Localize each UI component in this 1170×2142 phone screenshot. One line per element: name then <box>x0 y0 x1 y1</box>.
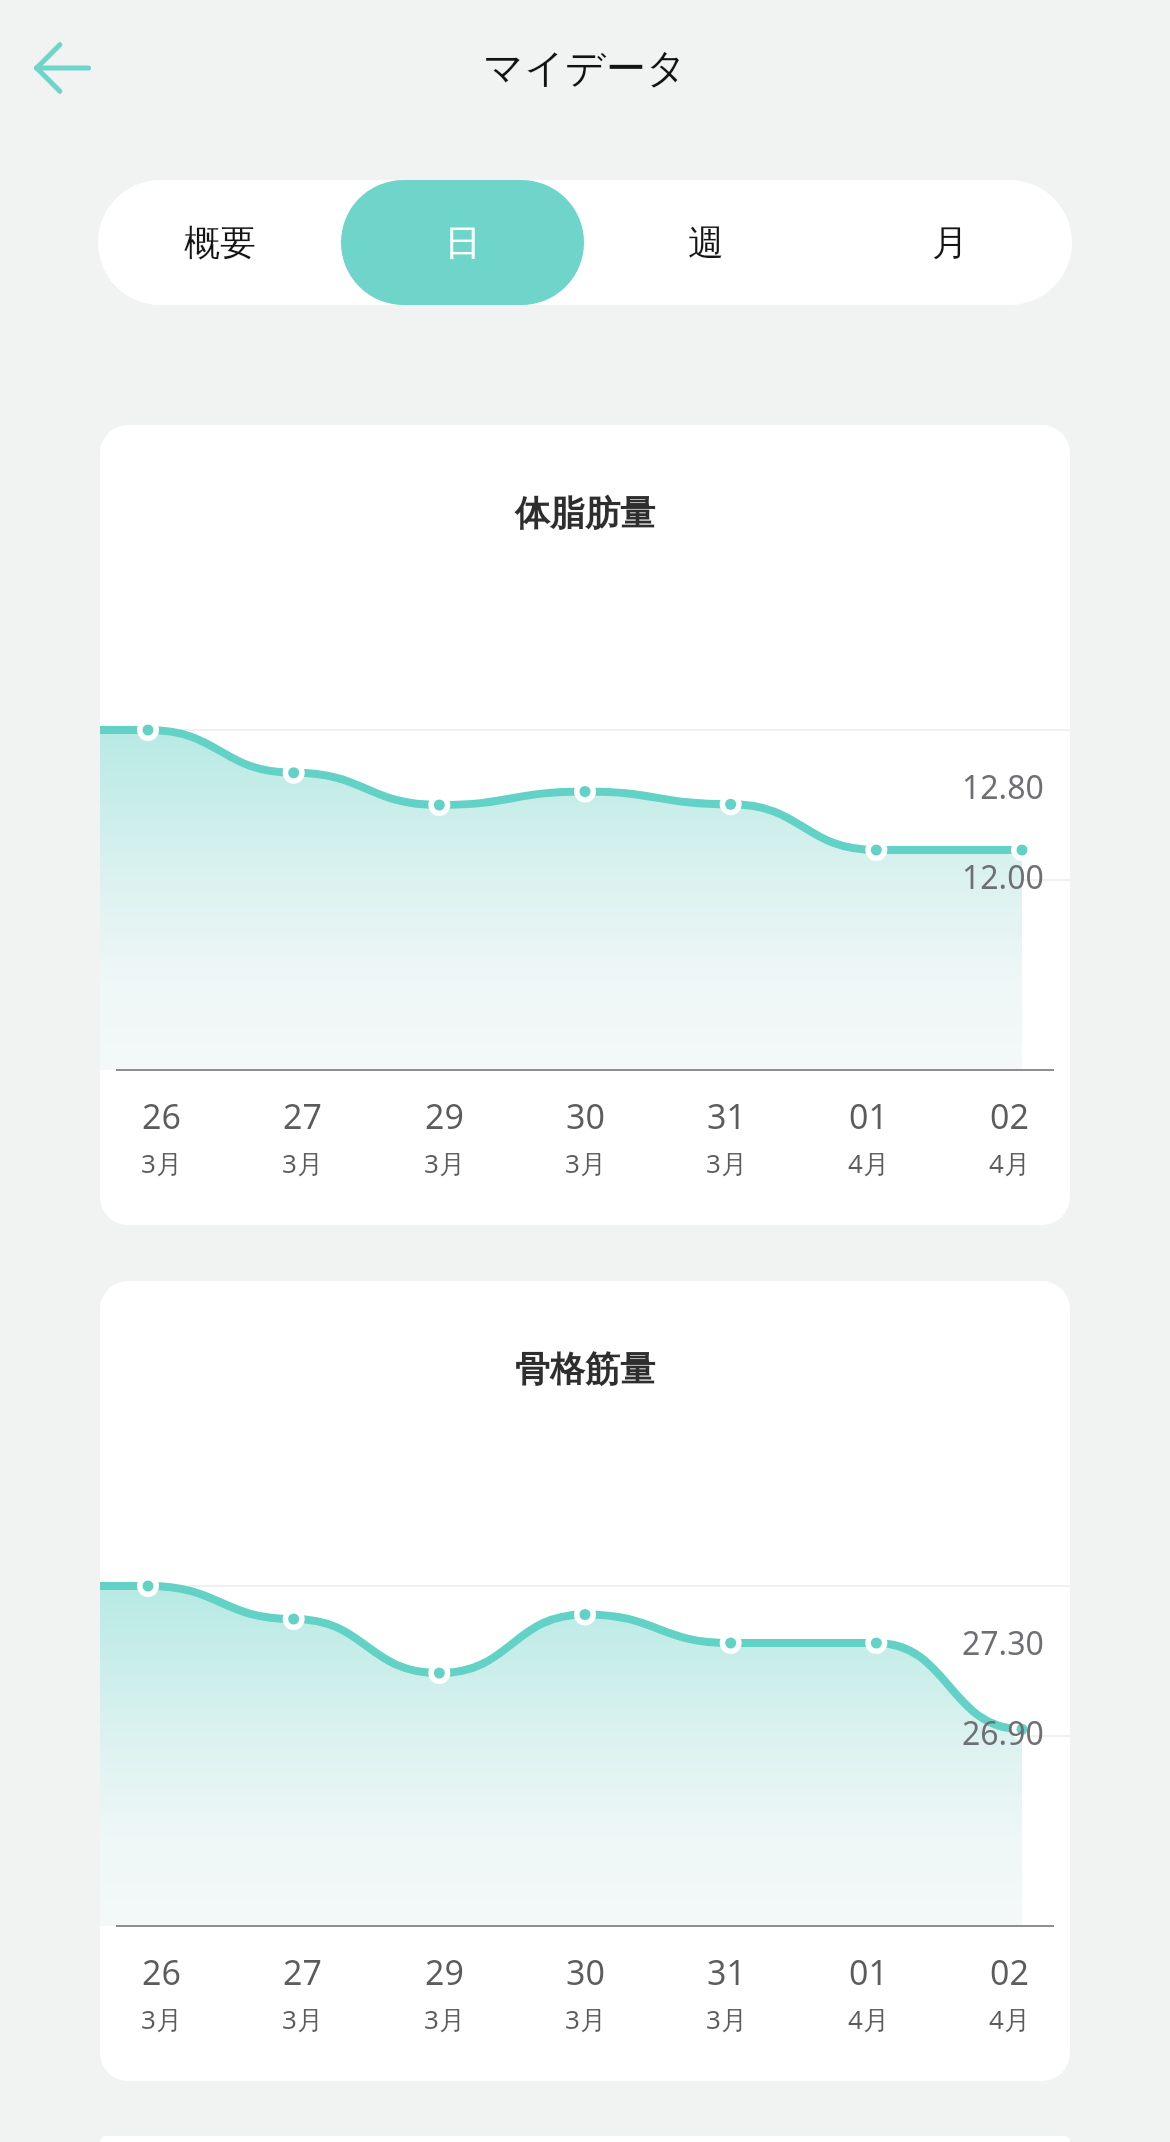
button[interactable]: 概要 <box>98 180 341 305</box>
button[interactable]: Back <box>14 20 110 116</box>
staticText: 4月 <box>989 2001 1030 2037</box>
staticText: 3月 <box>141 2001 182 2037</box>
staticText: 27.30 <box>962 1621 1044 1665</box>
staticText: 26 <box>142 1093 181 1139</box>
staticText: 3月 <box>706 1145 747 1181</box>
staticText: 02 <box>990 1093 1029 1139</box>
button[interactable]: 日 <box>341 180 584 305</box>
staticText: 3月 <box>565 2001 606 2037</box>
button[interactable]: 体脂肪量 <box>100 425 1070 1225</box>
staticText: 30 <box>566 1949 605 1995</box>
staticText: 4月 <box>989 1145 1030 1181</box>
staticText: 27 <box>283 1949 322 1995</box>
staticText: 31 <box>707 1093 746 1139</box>
staticText: 12.80 <box>962 765 1044 809</box>
staticText: 3月 <box>141 1145 182 1181</box>
staticText: 3月 <box>424 2001 465 2037</box>
staticText: 3月 <box>282 1145 323 1181</box>
button[interactable]: 週 <box>584 180 828 305</box>
staticText: 01 <box>849 1093 888 1139</box>
staticText: 4月 <box>848 2001 889 2037</box>
staticText: 01 <box>849 1949 888 1995</box>
staticText: 日 <box>445 220 481 265</box>
staticText: 30 <box>566 1093 605 1139</box>
staticText: 31 <box>707 1949 746 1995</box>
staticText: 月 <box>932 220 968 265</box>
staticText: 12.00 <box>962 855 1044 899</box>
staticText: 26 <box>142 1949 181 1995</box>
staticText: マイデータ <box>483 43 687 93</box>
button[interactable]: 月 <box>828 180 1072 305</box>
staticText: 4月 <box>848 1145 889 1181</box>
staticText: 3月 <box>565 1145 606 1181</box>
staticText: 29 <box>425 1949 464 1995</box>
staticText: 概要 <box>184 220 256 265</box>
staticText: 3月 <box>706 2001 747 2037</box>
staticText: 27 <box>283 1093 322 1139</box>
staticText: 体脂肪量 <box>100 491 1070 535</box>
staticText: 29 <box>425 1093 464 1139</box>
staticText: 3月 <box>282 2001 323 2037</box>
staticText: 02 <box>990 1949 1029 1995</box>
staticText: 週 <box>688 220 724 265</box>
staticText: 骨格筋量 <box>100 1347 1070 1391</box>
button[interactable]: 骨格筋量 <box>100 1281 1070 2081</box>
staticText: 26.90 <box>962 1711 1044 1755</box>
staticText: 3月 <box>424 1145 465 1181</box>
